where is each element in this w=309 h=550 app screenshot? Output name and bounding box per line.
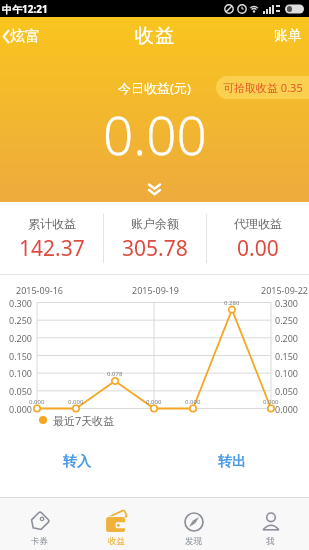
staticText: 0.150 <box>275 350 299 362</box>
staticText: 0.00 <box>103 98 207 170</box>
button[interactable]: 账单 <box>274 27 309 45</box>
staticText: 可拾取收益 0.35 <box>223 80 303 95</box>
staticText: 0.000 <box>29 398 45 406</box>
staticText: 转入 <box>63 453 91 471</box>
staticText: 我 <box>266 536 275 547</box>
staticText: 0.300 <box>9 297 33 309</box>
staticText: 0.050 <box>9 385 33 397</box>
staticText: 0.000 <box>263 398 279 406</box>
staticText: 收益 <box>134 24 175 48</box>
staticText: 账户余额 <box>131 216 179 231</box>
staticText: 0.000 <box>185 398 201 406</box>
staticText: 2015-09-19 <box>132 284 179 296</box>
staticText: 0.000 <box>68 398 84 406</box>
staticText: 2015-09-16 <box>16 284 63 296</box>
button[interactable]: 收益 <box>78 498 155 550</box>
staticText: 炫富 <box>10 27 40 46</box>
staticText: 卡券 <box>31 536 48 547</box>
staticText: 最近7天收益 <box>53 413 115 428</box>
staticText: 0.150 <box>9 350 33 362</box>
staticText: 0.00 <box>237 234 279 263</box>
staticText: 0.000 <box>146 398 162 406</box>
button[interactable]: 累计收益 <box>0 202 103 274</box>
staticText: 今日收益(元) <box>118 79 191 97</box>
button[interactable]: 卡券 <box>0 498 78 550</box>
staticText: 0.200 <box>275 332 299 344</box>
staticText: 收益 <box>108 536 125 547</box>
staticText: 0.300 <box>275 297 299 309</box>
staticText: 累计收益 <box>28 216 76 231</box>
staticText: 代理收益 <box>234 216 282 231</box>
staticText: 0.280 <box>224 299 240 307</box>
button[interactable]: 我 <box>232 498 309 550</box>
staticText: 0.050 <box>275 385 299 397</box>
button[interactable]: 转出 <box>154 427 309 497</box>
staticText: 0.100 <box>275 367 299 379</box>
button[interactable]: 可拾取收益 0.35 <box>216 76 309 99</box>
staticText: 0.200 <box>9 332 33 344</box>
staticText: 转出 <box>218 453 246 471</box>
button[interactable]: 炫富 <box>0 27 40 46</box>
staticText: 中午12:21 <box>2 2 48 16</box>
button[interactable]: 转入 <box>0 427 154 497</box>
staticText: 2015-09-22 <box>261 284 308 296</box>
button[interactable]: 账户余额 <box>104 202 206 274</box>
button[interactable]: 代理收益 <box>207 202 309 274</box>
staticText: 0.250 <box>9 314 33 326</box>
staticText: 0.000 <box>9 403 33 415</box>
button[interactable]: 发现 <box>155 498 232 550</box>
staticText: 发现 <box>185 536 202 547</box>
staticText: 0.000 <box>275 403 299 415</box>
staticText: 0.100 <box>9 367 33 379</box>
staticText: 142.37 <box>19 234 85 263</box>
staticText: 0.078 <box>107 370 123 378</box>
staticText: 0.250 <box>275 314 299 326</box>
staticText: 305.78 <box>122 234 188 263</box>
